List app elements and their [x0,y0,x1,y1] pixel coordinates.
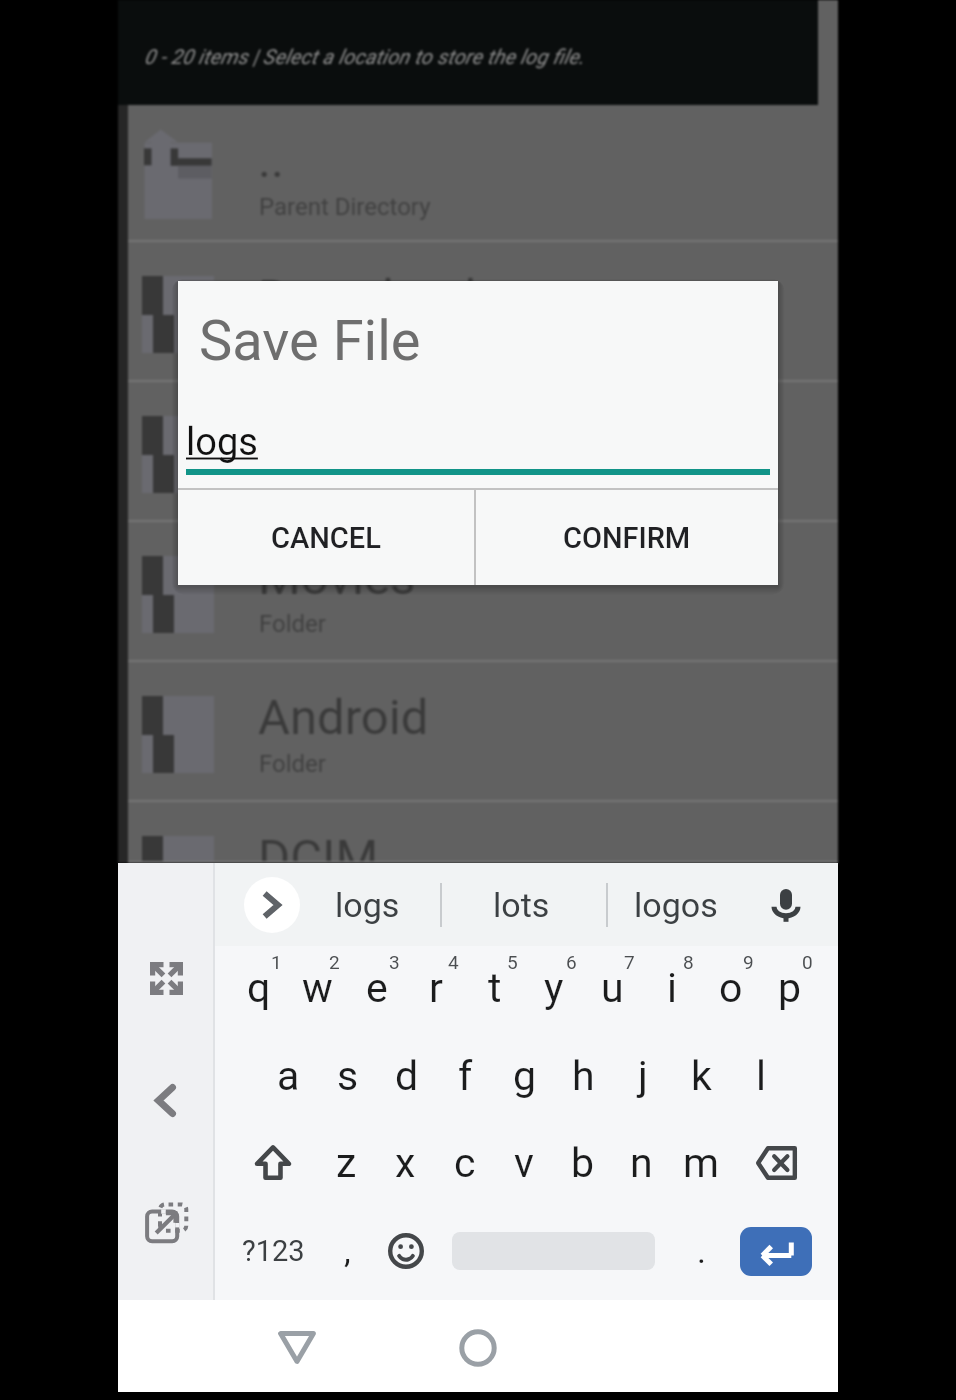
staticText: 3 [389,951,400,973]
button[interactable]: d [377,1036,436,1116]
button[interactable]: f [436,1036,495,1116]
button[interactable]: p [760,948,819,1028]
button[interactable]: lots [451,863,591,946]
staticText: h [572,1052,595,1100]
button[interactable]: .. [128,105,838,242]
staticText: Folder [259,890,326,918]
staticText: q [247,964,271,1012]
staticText: y [544,964,564,1012]
button[interactable]: o [701,948,760,1028]
button[interactable]: logos [606,863,746,946]
button[interactable]: Space [443,1211,663,1291]
staticText: Folder [259,470,326,498]
staticText: 0 - 20 items | Select a location to stor… [144,45,585,69]
button[interactable]: q [229,948,288,1028]
staticText: z [336,1139,357,1187]
button[interactable]: Backspace [745,1123,807,1203]
button[interactable]: Movies [128,522,838,662]
staticText: . [697,1231,706,1271]
button[interactable]: Back [267,1317,327,1377]
button[interactable]: . [676,1211,726,1291]
button[interactable]: Voice input [766,885,806,925]
button[interactable]: Enter [735,1211,817,1291]
staticText: i [667,964,677,1012]
staticText: l [756,1052,766,1100]
staticText: e [366,964,388,1012]
button[interactable]: , [322,1211,372,1291]
button[interactable]: DCIM [128,802,838,863]
staticText: 1 [271,951,282,973]
staticText: Folder [259,330,326,358]
staticText: s [337,1052,359,1100]
button[interactable]: c [435,1123,494,1203]
staticText: logs [335,885,400,925]
staticText: r [429,964,443,1012]
button[interactable]: b [553,1123,612,1203]
button[interactable]: logs [297,863,437,946]
staticText: a [277,1052,300,1100]
staticText: d [395,1052,419,1100]
button[interactable]: g [495,1036,554,1116]
staticText: 9 [743,951,754,973]
staticText: m [683,1139,719,1187]
staticText: Downloads [258,269,502,326]
button[interactable]: j [613,1036,672,1116]
staticText: v [514,1139,534,1187]
staticText: 4 [448,951,459,973]
staticText: w [302,964,333,1012]
staticText: ?123 [242,1234,305,1268]
button[interactable]: y [524,948,583,1028]
staticText: x [395,1139,416,1187]
staticText: 7 [624,951,635,973]
staticText: Save File [199,308,421,374]
staticText: Android [258,689,429,746]
button[interactable]: h [554,1036,613,1116]
button[interactable]: Android [128,662,838,802]
staticText: g [513,1052,537,1100]
button[interactable]: t [465,948,524,1028]
button[interactable]: v [494,1123,553,1203]
staticText: f [458,1052,473,1100]
staticText: Movies [258,549,416,606]
staticText: t [488,964,502,1012]
staticText: o [719,964,743,1012]
button[interactable]: r [406,948,465,1028]
button[interactable]: Expand keyboard [136,948,196,1008]
button[interactable]: x [376,1123,435,1203]
button[interactable]: a [259,1036,318,1116]
staticText: , [344,1231,351,1271]
button[interactable]: ?123 [231,1211,315,1291]
button[interactable]: Shift [242,1122,304,1202]
staticText: Folder [259,750,326,778]
button[interactable]: w [288,948,347,1028]
staticText: p [778,964,802,1012]
staticText: logs [186,420,258,465]
button[interactable]: Downloads [128,242,838,382]
button[interactable]: e [347,948,406,1028]
button[interactable]: More suggestions [244,877,300,933]
button[interactable]: i [642,948,701,1028]
button[interactable]: m [671,1123,730,1203]
button[interactable]: Home [448,1318,508,1378]
staticText: 2 [329,951,340,973]
staticText: c [454,1139,476,1187]
staticText: CANCEL [271,521,381,555]
button[interactable]: u [583,948,642,1028]
staticText: b [571,1139,595,1187]
button[interactable]: s [318,1036,377,1116]
button[interactable]: l [731,1036,790,1116]
button[interactable]: Previous [135,1070,195,1130]
button[interactable]: Floating keyboard [136,1191,196,1251]
button[interactable]: Pictures [128,382,838,522]
button[interactable]: Emoji [377,1211,435,1291]
staticText: CONFIRM [563,521,691,555]
staticText: 5 [507,951,518,973]
button[interactable]: z [317,1123,376,1203]
button[interactable]: k [672,1036,731,1116]
staticText: n [630,1139,653,1187]
button[interactable]: CONFIRM [476,490,778,585]
button[interactable]: n [612,1123,671,1203]
staticText: Folder [259,610,326,638]
button[interactable]: CANCEL [178,490,474,585]
